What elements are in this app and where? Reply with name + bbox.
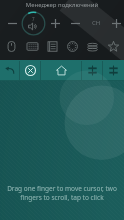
button[interactable]: Back	[0, 60, 20, 81]
button[interactable]: Mouse	[2, 38, 20, 54]
button[interactable]: Channel down	[67, 12, 83, 34]
button[interactable]: Volume down	[4, 12, 20, 34]
button[interactable]: Volume	[21, 11, 46, 36]
button[interactable]: Channel up	[109, 12, 124, 34]
staticText: 7	[32, 16, 35, 22]
staticText: CH	[92, 19, 101, 27]
button[interactable]: Dial	[63, 38, 81, 54]
button[interactable]: Layers	[83, 38, 101, 54]
button[interactable]: Adjust	[82, 60, 103, 81]
button[interactable]: Close	[20, 60, 41, 81]
button[interactable]: Home	[41, 60, 82, 81]
button[interactable]: Favorite	[104, 38, 122, 54]
button[interactable]: Touchpad	[0, 81, 124, 220]
button[interactable]: Settings	[103, 60, 124, 81]
staticText: Менеджер подключений	[0, 1, 124, 9]
button[interactable]: List	[43, 38, 61, 54]
button[interactable]: Keyboard	[23, 38, 41, 54]
staticText: Drag one finger to move cursor, two fing…	[4, 184, 120, 202]
button[interactable]: Volume up	[47, 12, 63, 34]
